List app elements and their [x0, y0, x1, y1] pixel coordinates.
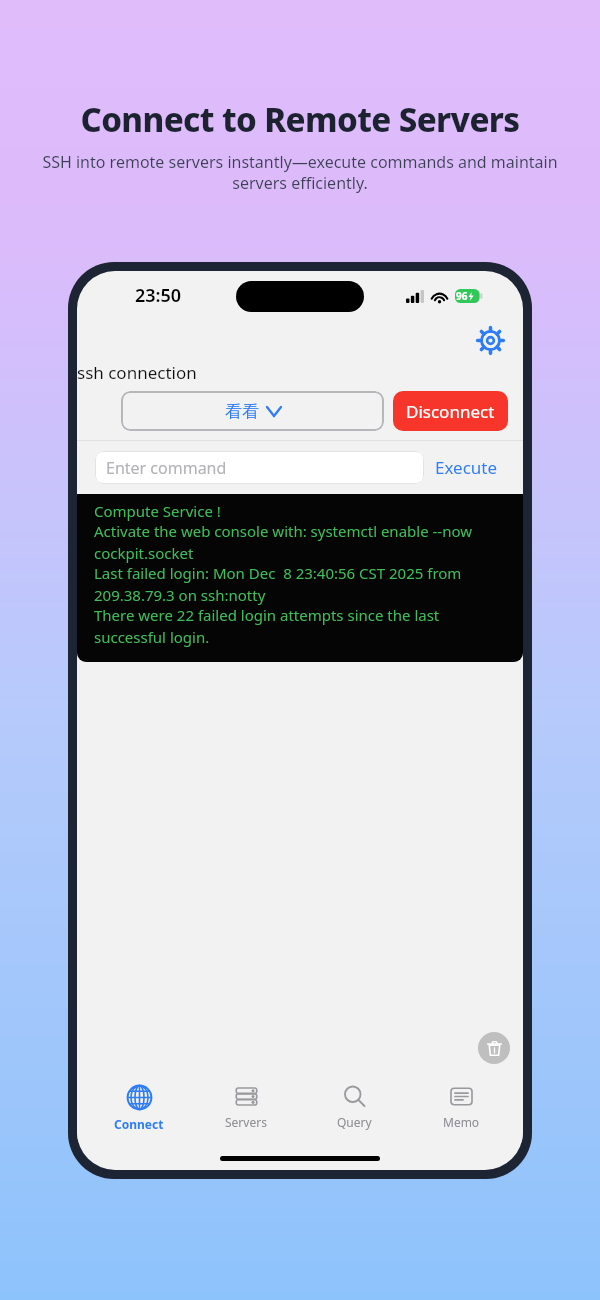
staticText: Query — [337, 1114, 372, 1130]
staticText: Compute Service ! — [94, 501, 221, 521]
staticText: Disconnect — [406, 400, 495, 423]
staticText: Last failed login: Mon Dec 8 23:40:56 CS… — [94, 563, 511, 605]
button[interactable]: Execute — [424, 450, 509, 485]
staticText: Connect — [114, 1116, 164, 1132]
staticText: Servers — [225, 1114, 267, 1130]
staticText: Activate the web console with: systemctl… — [94, 521, 511, 563]
staticText: 96 — [456, 289, 468, 303]
button[interactable]: Connect — [93, 1080, 185, 1136]
staticText: Execute — [435, 456, 498, 479]
staticText: Connect to Remote Servers — [80, 97, 520, 142]
staticText: There were 22 failed login attempts sinc… — [94, 605, 511, 647]
staticText: Memo — [443, 1114, 480, 1130]
button[interactable]: Memo — [415, 1080, 507, 1134]
staticText: 看看 — [225, 401, 259, 422]
staticText: SSH into remote servers instantly—execut… — [30, 151, 570, 194]
button[interactable]: Servers — [200, 1080, 292, 1134]
button[interactable]: 看看 — [121, 391, 384, 431]
staticText: ssh connection — [77, 361, 197, 384]
button[interactable]: Query — [308, 1080, 400, 1134]
button[interactable]: Disconnect — [393, 391, 508, 431]
button[interactable]: Clear output — [478, 1032, 510, 1064]
staticText: 23:50 — [135, 283, 182, 308]
button[interactable]: Settings — [472, 322, 508, 358]
staticText: Enter command — [106, 457, 227, 479]
button[interactable]: Enter command — [95, 451, 424, 484]
